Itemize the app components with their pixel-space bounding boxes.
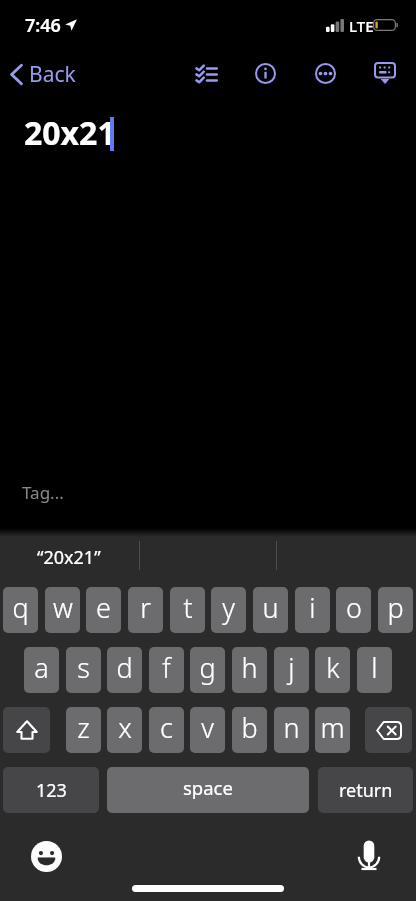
button[interactable]: Space	[107, 767, 309, 813]
button[interactable]: l	[357, 647, 392, 693]
staticText: h	[241, 649, 258, 686]
staticText: return	[339, 778, 393, 803]
button[interactable]: More options	[308, 56, 342, 90]
button[interactable]: k	[315, 647, 350, 693]
button[interactable]: Numbers	[3, 767, 99, 813]
button[interactable]: b	[232, 707, 267, 753]
staticText: a	[34, 649, 49, 686]
staticText: Back	[29, 60, 76, 89]
button[interactable]: Checklist	[189, 56, 223, 90]
staticText: o	[346, 589, 362, 626]
button[interactable]: x	[107, 707, 142, 753]
button[interactable]: w	[45, 587, 80, 633]
staticText: i	[309, 589, 316, 626]
staticText: t	[183, 589, 193, 626]
button[interactable]: f	[149, 647, 184, 693]
button[interactable]: m	[315, 707, 350, 753]
staticText: r	[140, 589, 151, 626]
button[interactable]: g	[190, 647, 225, 693]
button[interactable]: r	[128, 587, 163, 633]
button[interactable]: n	[274, 707, 309, 753]
button[interactable]: Backspace	[365, 707, 412, 753]
staticText: n	[283, 709, 300, 746]
staticText: LTE	[349, 16, 374, 36]
button[interactable]: Shift	[3, 707, 50, 753]
button[interactable]: z	[66, 707, 101, 753]
button[interactable]: Info	[248, 56, 282, 90]
button[interactable]: q	[3, 587, 38, 633]
staticText: w	[53, 589, 73, 626]
staticText: d	[116, 649, 133, 686]
button[interactable]: y	[211, 587, 246, 633]
staticText: q	[12, 589, 29, 626]
button[interactable]: Hide keyboard	[368, 56, 402, 90]
staticText: 7:46	[25, 13, 61, 38]
staticText: f	[162, 649, 171, 686]
button[interactable]: v	[190, 707, 225, 753]
staticText: l	[371, 649, 378, 686]
button[interactable]: a	[24, 647, 59, 693]
staticText: u	[262, 589, 279, 626]
button[interactable]: Back	[6, 56, 82, 93]
staticText: v	[201, 709, 214, 746]
staticText: m	[320, 709, 345, 746]
button[interactable]: Emoji keyboard	[31, 841, 62, 872]
button[interactable]: s	[66, 647, 101, 693]
button[interactable]: u	[253, 587, 288, 633]
button[interactable]: i	[295, 587, 330, 633]
button[interactable]: Return	[318, 767, 413, 813]
staticText: j	[288, 649, 295, 686]
button[interactable]: o	[336, 587, 371, 633]
button[interactable]: c	[149, 707, 184, 753]
staticText: y	[222, 589, 235, 626]
staticText: e	[96, 589, 111, 626]
staticText: z	[77, 709, 90, 746]
staticText: b	[241, 709, 258, 746]
staticText: g	[199, 649, 216, 686]
button[interactable]: Dictation	[355, 836, 383, 872]
button[interactable]: h	[232, 647, 267, 693]
staticText: space	[183, 775, 233, 800]
staticText: s	[77, 649, 90, 686]
staticText: 20x21	[24, 111, 116, 155]
button[interactable]: t	[170, 587, 205, 633]
button[interactable]: d	[107, 647, 142, 693]
staticText: 123	[36, 778, 67, 803]
button[interactable]: j	[274, 647, 309, 693]
staticText: k	[326, 649, 340, 686]
button[interactable]: p	[378, 587, 413, 633]
button[interactable]: “20x21”	[37, 545, 101, 570]
staticText: p	[387, 589, 404, 626]
staticText: c	[160, 709, 173, 746]
staticText: x	[118, 709, 132, 746]
button[interactable]: e	[86, 587, 121, 633]
button[interactable]: Tag...	[22, 481, 64, 504]
